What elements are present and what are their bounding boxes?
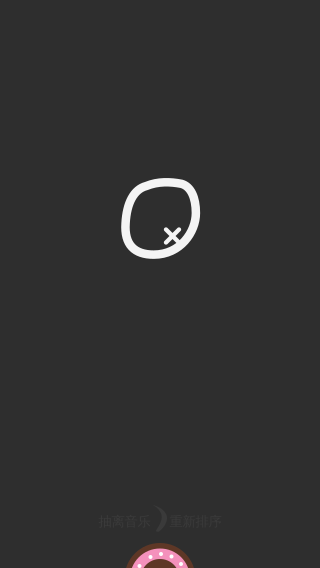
button[interactable]: App logo (119, 178, 201, 259)
staticText: 重新排序 (169, 513, 221, 530)
staticText: 抽离音乐 (98, 513, 150, 530)
